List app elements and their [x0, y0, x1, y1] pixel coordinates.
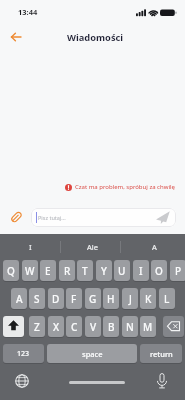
staticText: J [129, 292, 132, 306]
staticText: Ale [87, 242, 98, 252]
button[interactable]: N [122, 316, 138, 337]
button[interactable]: H [103, 288, 119, 309]
button[interactable]: R [59, 260, 75, 281]
button[interactable]: D [48, 288, 64, 309]
staticText: X [53, 320, 60, 334]
button[interactable]: M [140, 316, 156, 337]
staticText: Q [7, 264, 15, 278]
staticText: P [175, 264, 182, 278]
staticText: U [118, 264, 126, 278]
staticText: H [107, 292, 115, 306]
staticText: R [64, 264, 71, 278]
staticText: B [108, 320, 115, 334]
staticText: K [145, 292, 152, 306]
button[interactable]: W [22, 260, 38, 281]
staticText: O [155, 264, 163, 278]
button[interactable]: V [85, 316, 101, 337]
staticText: A [16, 292, 23, 306]
button[interactable]: F [66, 288, 82, 309]
staticText: T [82, 264, 88, 278]
button[interactable]: B [103, 316, 119, 337]
staticText: I [29, 242, 32, 252]
button[interactable]: I [133, 260, 149, 281]
button[interactable] [6, 208, 26, 226]
button[interactable] [163, 316, 184, 337]
staticText: A [152, 242, 157, 252]
button[interactable]: space [47, 344, 137, 363]
staticText: E [45, 264, 51, 278]
staticText: S [34, 292, 40, 306]
staticText: space [82, 349, 103, 359]
button[interactable] [7, 29, 25, 45]
button[interactable]: A [123, 240, 185, 254]
staticText: Wiadomości [67, 31, 124, 44]
button[interactable]: P [170, 260, 185, 281]
staticText: G [89, 292, 97, 306]
staticText: Y [101, 264, 107, 278]
button[interactable]: K [140, 288, 156, 309]
staticText: W [25, 264, 35, 278]
staticText: L [164, 292, 170, 306]
button[interactable]: J [122, 288, 138, 309]
button[interactable]: return [140, 344, 182, 363]
button[interactable] [10, 370, 34, 392]
button[interactable]: U [114, 260, 130, 281]
button[interactable]: A [11, 288, 27, 309]
button[interactable]: Y [96, 260, 112, 281]
button[interactable] [150, 369, 174, 393]
staticText: Czat ma problem, spróbuj za chwilę [75, 183, 175, 191]
staticText: return [150, 349, 173, 359]
button[interactable]: S [29, 288, 45, 309]
staticText: Z [34, 320, 40, 334]
button[interactable] [3, 316, 24, 337]
button[interactable]: L [159, 288, 175, 309]
staticText: D [52, 292, 60, 306]
button[interactable]: Ale [61, 240, 123, 254]
button[interactable]: I [0, 240, 61, 254]
staticText: N [126, 320, 134, 334]
staticText: C [71, 320, 78, 334]
button[interactable]: Q [3, 260, 19, 281]
button[interactable]: 123 [3, 344, 44, 363]
staticText: V [90, 320, 97, 334]
button[interactable]: E [40, 260, 56, 281]
button[interactable]: G [85, 288, 101, 309]
button[interactable]: Z [29, 316, 45, 337]
staticText: I [139, 264, 143, 278]
staticText: 123 [17, 349, 30, 359]
staticText: 13:44 [18, 7, 38, 17]
button[interactable]: T [77, 260, 93, 281]
button[interactable]: Pisz tutaj... [31, 208, 176, 227]
staticText: M [143, 320, 153, 334]
staticText: Pisz tutaj... [38, 214, 66, 221]
button[interactable]: C [66, 316, 82, 337]
button[interactable]: O [151, 260, 167, 281]
button[interactable]: X [48, 316, 64, 337]
staticText: F [71, 292, 77, 306]
